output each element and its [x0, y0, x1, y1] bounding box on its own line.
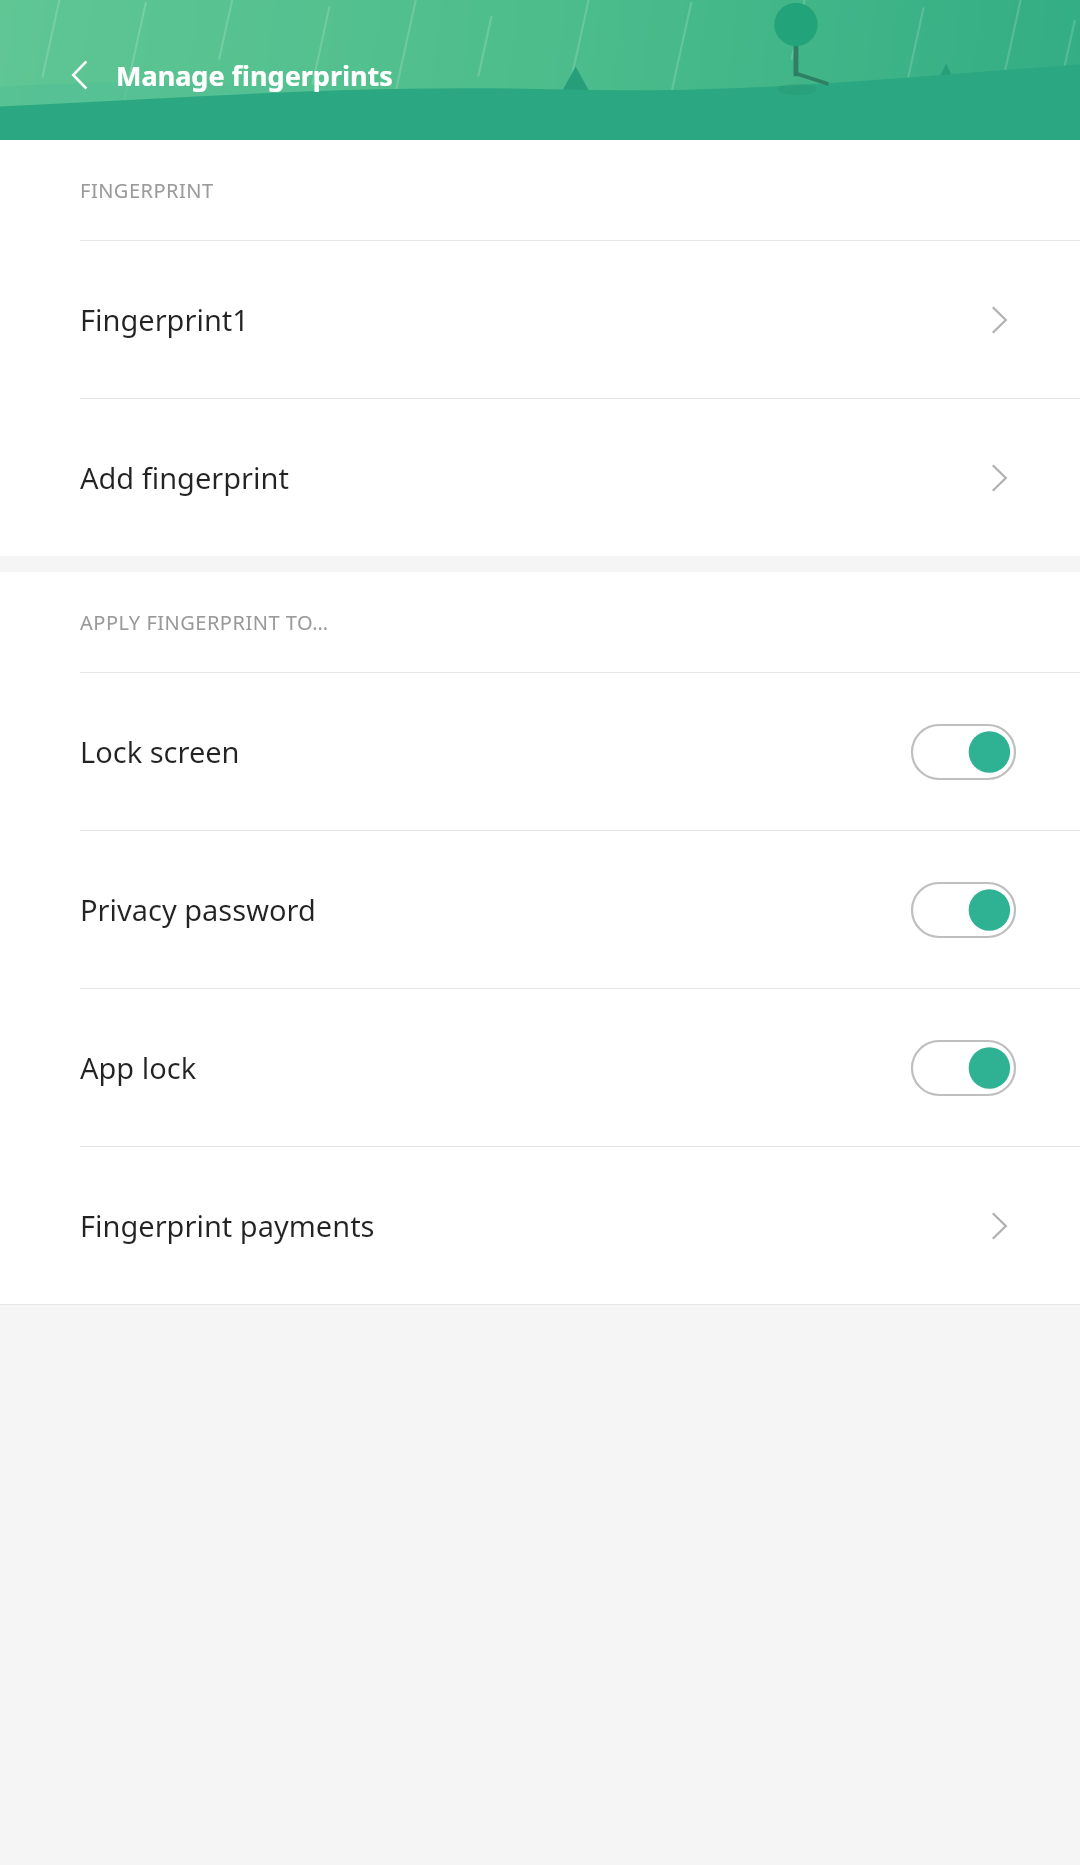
- button[interactable]: Lock screen: [0, 673, 1080, 830]
- staticText: Fingerprint1: [80, 300, 249, 339]
- staticText: App lock: [80, 1048, 197, 1087]
- button[interactable]: App lock: [0, 989, 1080, 1146]
- button[interactable]: Back: [52, 47, 108, 103]
- staticText: Privacy password: [80, 890, 316, 929]
- staticText: APPLY FINGERPRINT TO…: [80, 609, 329, 636]
- button[interactable]: Toggle on: [911, 882, 1016, 938]
- button[interactable]: Fingerprint payments: [0, 1147, 1080, 1304]
- staticText: Fingerprint payments: [80, 1206, 375, 1245]
- button[interactable]: Toggle on: [911, 724, 1016, 780]
- button[interactable]: Toggle on: [911, 1040, 1016, 1096]
- button[interactable]: Add fingerprint: [0, 399, 1080, 556]
- staticText: Lock screen: [80, 732, 240, 771]
- staticText: Add fingerprint: [80, 458, 289, 497]
- staticText: FINGERPRINT: [80, 177, 214, 204]
- button[interactable]: Privacy password: [0, 831, 1080, 988]
- staticText: Manage fingerprints: [116, 57, 393, 94]
- button[interactable]: Fingerprint1: [0, 241, 1080, 398]
